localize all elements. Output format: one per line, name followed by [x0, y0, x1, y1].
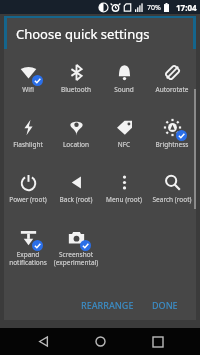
- button[interactable]: Menu (root): [100, 165, 148, 220]
- staticText: Menu (root): [100, 195, 148, 204]
- button[interactable]: REARRANGE: [75, 294, 140, 316]
- button[interactable]: Back: [28, 328, 58, 355]
- button[interactable]: NFC: [100, 110, 148, 165]
- button[interactable]: Back (root): [52, 165, 100, 220]
- staticText: Expand notifications: [4, 250, 52, 267]
- staticText: Search (root): [148, 195, 196, 204]
- staticText: Back (root): [52, 195, 100, 204]
- button[interactable]: Power (root): [4, 165, 52, 220]
- button[interactable]: Bluetooth: [52, 55, 100, 110]
- staticText: Sound: [100, 85, 148, 94]
- staticText: Flashlight: [4, 140, 52, 149]
- staticText: Brightness: [148, 140, 196, 149]
- staticText: 70%: [147, 3, 161, 13]
- button[interactable]: Search (root): [148, 165, 196, 220]
- button[interactable]: Recents: [143, 328, 173, 355]
- staticText: Autorotate: [148, 85, 196, 94]
- staticText: Bluetooth: [52, 85, 100, 94]
- staticText: Screenshot (experimental): [52, 250, 100, 267]
- button[interactable]: Expand notifications: [4, 220, 52, 275]
- button[interactable]: Wifi: [4, 55, 52, 110]
- button[interactable]: Screenshot (experimental): [52, 220, 100, 275]
- staticText: Location: [52, 140, 100, 149]
- staticText: Wifi: [4, 85, 52, 94]
- staticText: Power (root): [4, 195, 52, 204]
- button[interactable]: Location: [52, 110, 100, 165]
- button[interactable]: Flashlight: [4, 110, 52, 165]
- staticText: 17:04: [176, 2, 197, 13]
- staticText: REARRANGE: [81, 299, 134, 311]
- button[interactable]: Brightness: [148, 110, 196, 165]
- staticText: Choose quick settings: [16, 25, 150, 43]
- button[interactable]: Home: [85, 328, 115, 355]
- staticText: NFC: [100, 140, 148, 149]
- button[interactable]: Sound: [100, 55, 148, 110]
- button[interactable]: DONE: [146, 294, 184, 316]
- button[interactable]: Autorotate: [148, 55, 196, 110]
- staticText: DONE: [152, 299, 178, 311]
